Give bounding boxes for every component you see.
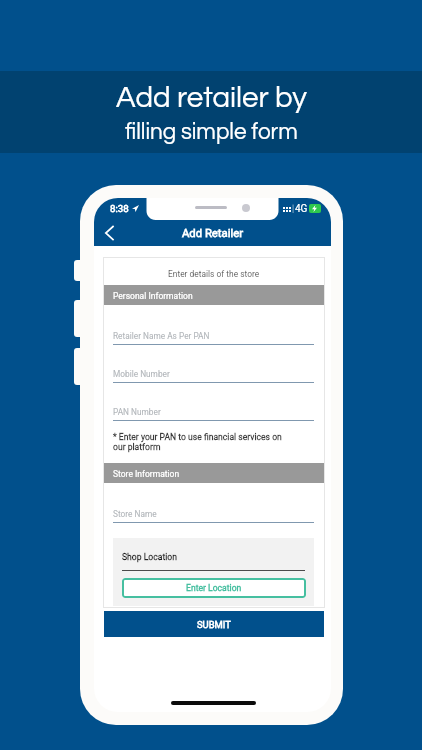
staticText: Add retailer by (116, 83, 307, 113)
staticText: * Enter your PAN to use financial servic… (113, 432, 285, 452)
staticText: Personal Information (113, 291, 193, 301)
button[interactable]: Enter Location (122, 578, 306, 598)
staticText: Store Information (113, 469, 180, 479)
staticText: PAN Number (113, 407, 161, 417)
staticText: SUBMIT (197, 619, 231, 630)
staticText: Enter Location (186, 583, 242, 593)
staticText: Enter details of the store (168, 269, 260, 279)
staticText: filling simple form (125, 121, 298, 144)
staticText: Store Name (113, 509, 157, 519)
button[interactable]: Back (94, 220, 124, 246)
staticText: Retailer Name As Per PAN (113, 331, 210, 341)
staticText: 4G (295, 203, 308, 215)
button[interactable]: SUBMIT (104, 611, 324, 637)
staticText: 8:38 (110, 203, 129, 214)
staticText: Mobile Number (113, 369, 170, 379)
staticText: Shop Location (122, 552, 177, 562)
staticText: Add Retailer (182, 227, 244, 240)
